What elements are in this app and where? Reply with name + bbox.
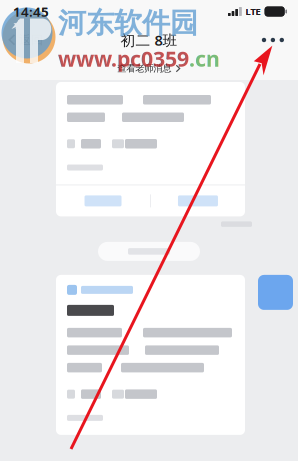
staticText: 河东软件园 <box>58 6 198 40</box>
staticText: LTE <box>246 5 261 18</box>
staticText: 14:45 <box>13 3 49 20</box>
button[interactable]: 返回 <box>0 23 53 57</box>
staticText: www.pc0359 <box>58 44 189 73</box>
staticText: LTE <box>246 5 261 18</box>
button[interactable] <box>56 185 150 216</box>
staticText: 初二 8班 <box>120 30 177 50</box>
staticText: 返回 <box>19 33 43 47</box>
button[interactable]: 查看老师消息 <box>0 57 298 80</box>
staticText: 14:45 <box>13 3 49 20</box>
button[interactable]: More <box>248 23 298 57</box>
button[interactable] <box>98 242 200 261</box>
staticText: 查看老师消息 <box>117 63 171 74</box>
staticText: .cn <box>189 44 220 73</box>
button[interactable] <box>151 185 245 216</box>
